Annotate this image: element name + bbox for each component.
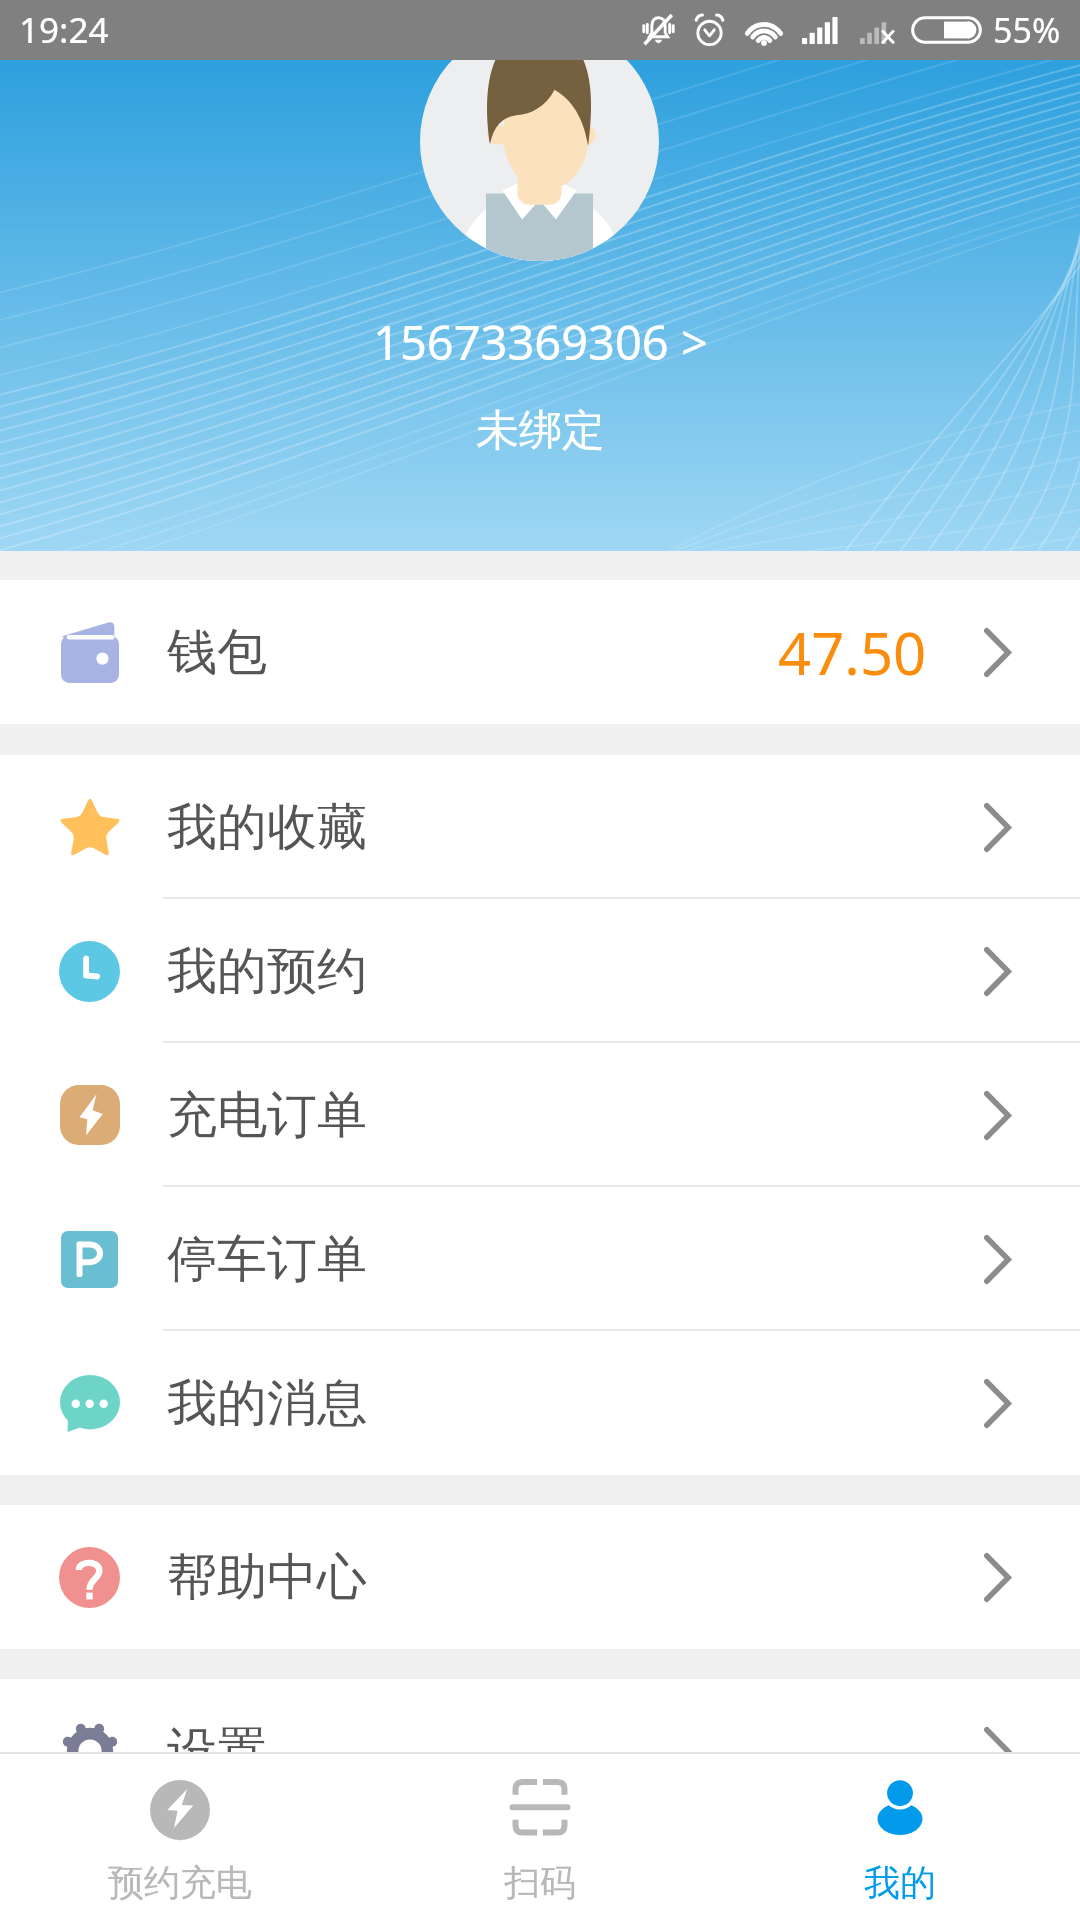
staticText: 扫码: [504, 1860, 576, 1905]
button[interactable]: 我的消息: [0, 1331, 1080, 1475]
staticText: 15673369306 >: [373, 310, 708, 374]
button[interactable]: 充电订单: [0, 1043, 1080, 1187]
staticText: 未绑定: [476, 404, 605, 458]
button[interactable]: 我的: [720, 1754, 1080, 1920]
staticText: 47.50: [778, 613, 927, 692]
staticText: 我的: [864, 1860, 936, 1905]
staticText: 设置: [167, 1720, 267, 1783]
staticText: 停车订单: [167, 1228, 367, 1291]
button[interactable]: 钱包: [0, 580, 1080, 724]
staticText: 我的收藏: [167, 796, 367, 859]
button[interactable]: 我的收藏: [0, 755, 1080, 899]
staticText: 我的消息: [167, 1372, 367, 1435]
staticText: 19:24: [19, 6, 109, 54]
button[interactable]: Avatar: [420, 22, 659, 261]
button[interactable]: 扫码: [360, 1754, 720, 1920]
staticText: 钱包: [167, 621, 267, 684]
staticText: 我的预约: [167, 940, 367, 1003]
staticText: 帮助中心: [167, 1546, 367, 1609]
staticText: 预约充电: [108, 1860, 252, 1905]
button[interactable]: 设置: [0, 1679, 1080, 1823]
button[interactable]: 停车订单: [0, 1187, 1080, 1331]
button[interactable]: 15673369306 >: [353, 302, 728, 382]
button[interactable]: 我的预约: [0, 899, 1080, 1043]
button[interactable]: 帮助中心: [0, 1505, 1080, 1649]
staticText: 55%: [993, 7, 1061, 53]
button[interactable]: 预约充电: [0, 1754, 360, 1920]
staticText: 充电订单: [167, 1084, 367, 1147]
